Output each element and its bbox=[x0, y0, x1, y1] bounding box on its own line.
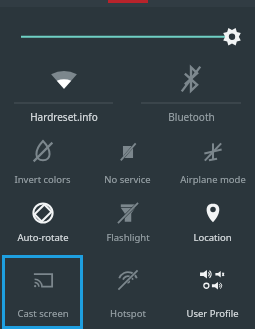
staticText: Hotspot bbox=[110, 307, 146, 320]
staticText: Hardreset.info bbox=[30, 110, 98, 124]
staticText: Airplane mode bbox=[180, 173, 246, 186]
staticText: Bluetooth bbox=[168, 110, 215, 124]
staticText: Invert colors bbox=[14, 173, 71, 186]
button[interactable]: Flashlight bbox=[85, 195, 170, 253]
button[interactable]: Airplane mode bbox=[170, 130, 255, 195]
staticText: Auto-rotate bbox=[17, 231, 69, 244]
button[interactable]: No service bbox=[85, 130, 170, 195]
button[interactable]: Invert colors bbox=[0, 130, 85, 195]
button[interactable]: Cast screen bbox=[0, 253, 85, 329]
staticText: No service bbox=[104, 173, 151, 186]
staticText: User Profile bbox=[186, 307, 239, 320]
staticText: Cast screen bbox=[17, 307, 69, 320]
button[interactable]: User Profile bbox=[170, 253, 255, 329]
staticText: Location bbox=[193, 231, 232, 244]
button[interactable]: Bluetooth bbox=[127, 55, 255, 130]
button[interactable]: Hotspot bbox=[85, 253, 170, 329]
staticText: Flashlight bbox=[106, 231, 150, 244]
button[interactable]: Location bbox=[170, 195, 255, 253]
button[interactable]: Hardreset.info bbox=[0, 55, 127, 130]
button[interactable]: Auto-rotate bbox=[0, 195, 85, 253]
